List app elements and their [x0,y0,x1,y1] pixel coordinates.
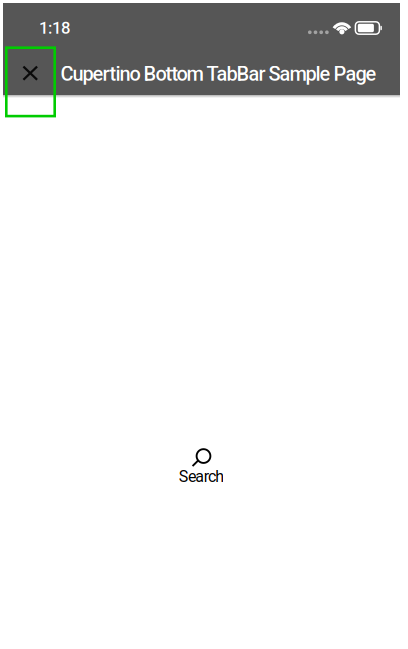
staticText: Cupertino Bottom TabBar Sample Page [60,62,376,86]
staticText: 1:18 [39,18,70,38]
button[interactable]: Close [5,47,55,117]
staticText: Search [179,467,224,486]
